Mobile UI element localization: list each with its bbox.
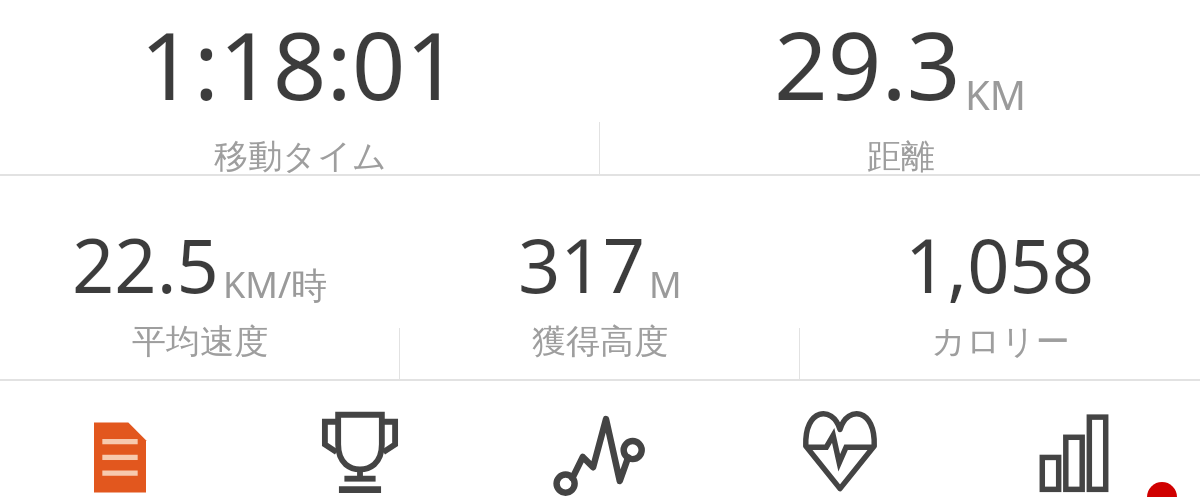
staticText: 移動タイム [214, 135, 387, 174]
button[interactable]: 1:18:01 [140, 0, 460, 174]
staticText: 距離 [867, 135, 935, 174]
staticText: KM/時 [223, 260, 328, 309]
button[interactable]: Feed [0, 381, 240, 497]
button[interactable]: 317 [518, 176, 682, 363]
staticText: 29.3 [774, 0, 961, 128]
staticText: 獲得高度 [532, 320, 668, 363]
staticText: M [649, 260, 682, 309]
button[interactable]: Stats [960, 381, 1200, 497]
button[interactable]: 22.5 [72, 176, 328, 363]
staticText: 22.5 [72, 214, 219, 315]
button[interactable]: 1,058 [905, 176, 1095, 363]
staticText: 317 [518, 214, 645, 315]
staticText: 1,058 [905, 214, 1095, 315]
button[interactable]: Challenges [240, 381, 480, 497]
button[interactable]: 29.3 [774, 0, 1027, 174]
staticText: 平均速度 [132, 320, 268, 363]
button[interactable]: Health [720, 381, 960, 497]
staticText: KM [965, 67, 1027, 121]
staticText: カロリー [931, 320, 1070, 363]
staticText: 1:18:01 [140, 0, 460, 128]
button[interactable]: Activity [480, 381, 720, 497]
